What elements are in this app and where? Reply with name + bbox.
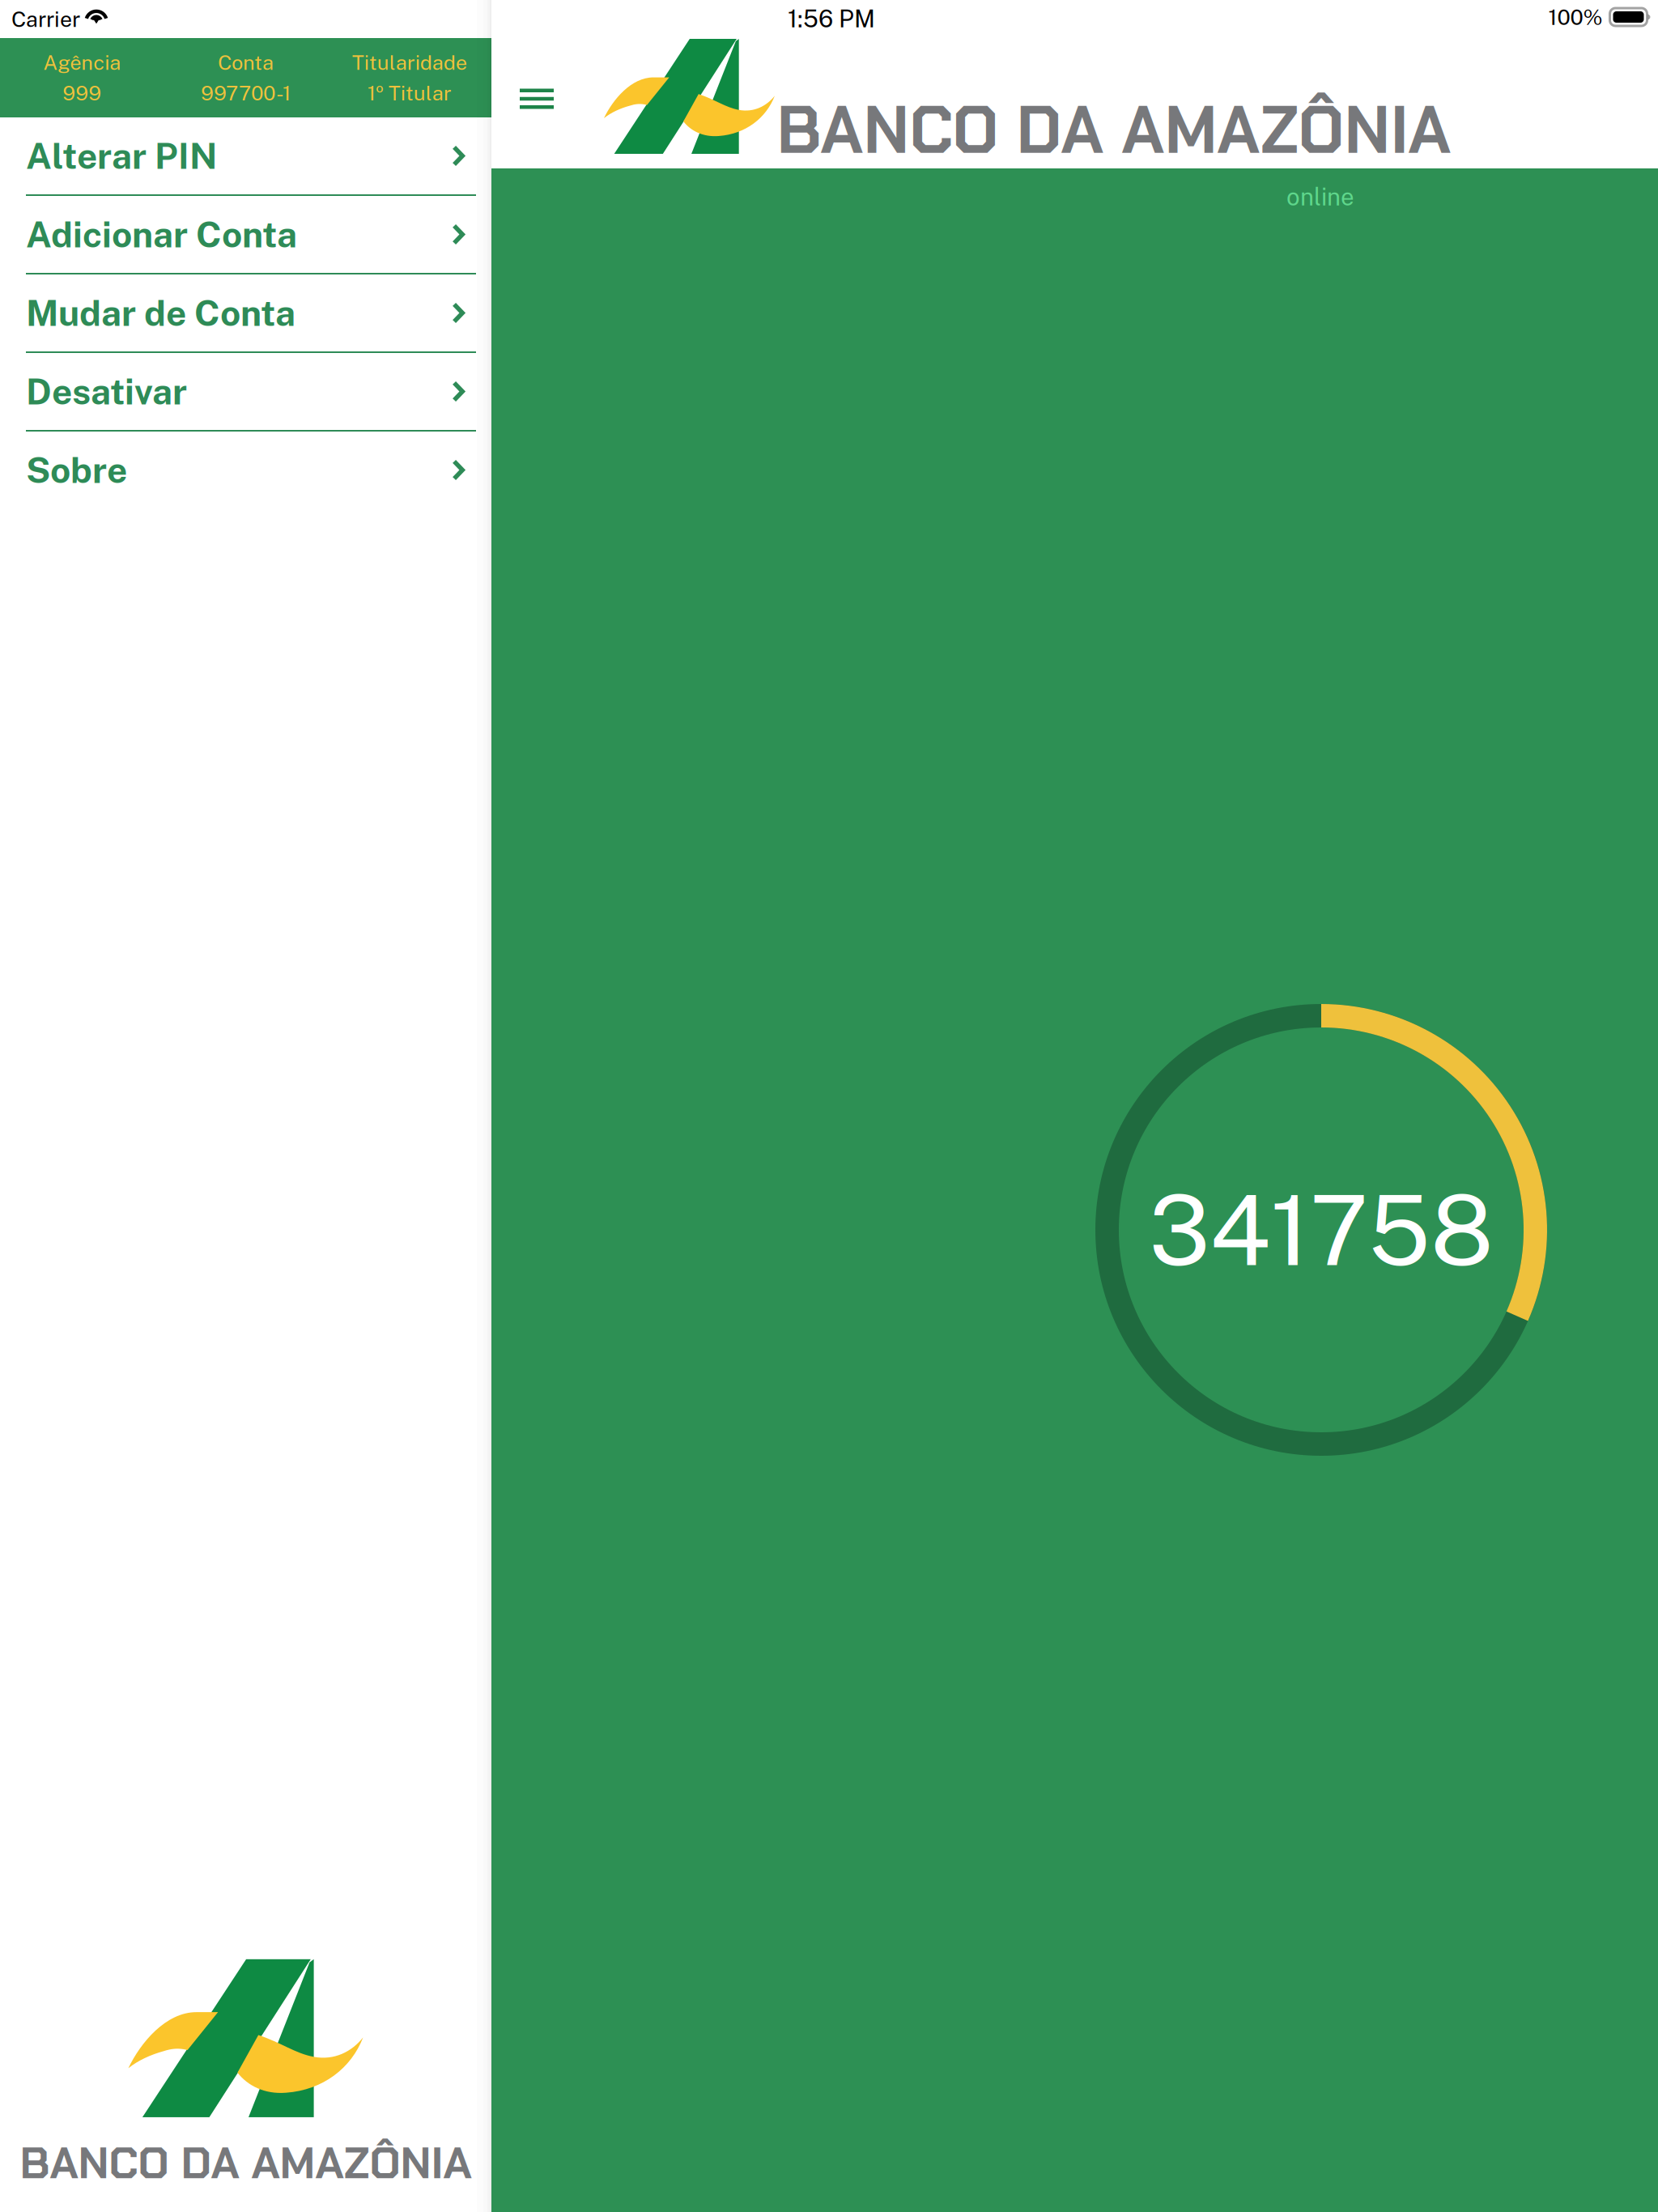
staticText: 1:56 PM <box>788 5 875 33</box>
button[interactable]: Sobre <box>0 432 491 508</box>
staticText: BANCO DA AMAZÔNIA <box>20 2134 472 2192</box>
staticText: Desativar <box>26 371 187 412</box>
staticText: 999 <box>62 81 101 105</box>
staticText: Mudar de Conta <box>26 292 295 334</box>
button[interactable]: Mudar de Conta <box>0 274 491 351</box>
button[interactable]: Alterar PIN <box>0 117 491 194</box>
staticText: 997700-1 <box>201 81 291 105</box>
staticText: BANCO DA AMAZÔNIA <box>777 88 1451 173</box>
staticText: Alterar PIN <box>26 135 217 177</box>
staticText: Titularidade <box>352 50 467 74</box>
button[interactable]: Menu <box>495 60 578 138</box>
staticText: Conta <box>218 50 274 74</box>
staticText: 341758 <box>1149 1173 1494 1287</box>
button[interactable]: Desativar <box>0 353 491 430</box>
staticText: Adicionar Conta <box>26 213 297 255</box>
button[interactable]: Adicionar Conta <box>0 196 491 273</box>
staticText: 100% <box>1548 4 1603 30</box>
staticText: Sobre <box>26 449 127 491</box>
staticText: Agência <box>43 50 121 74</box>
staticText: Carrier <box>11 6 80 32</box>
staticText: online <box>1286 183 1354 211</box>
staticText: 1º Titular <box>367 81 452 105</box>
